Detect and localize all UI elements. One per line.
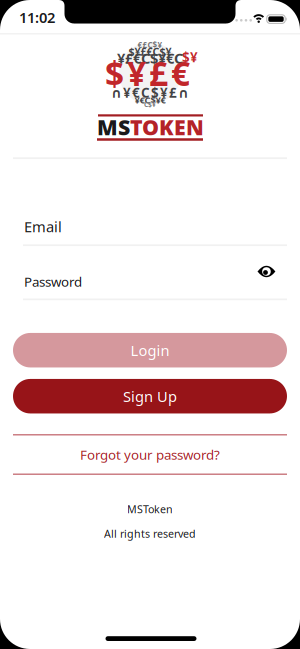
staticText: ¥€C$¥€ — [134, 94, 165, 106]
button[interactable]: Password — [0, 275, 300, 297]
staticText: C$¥ — [144, 100, 156, 109]
staticText: ¥£€C$¥€C — [117, 48, 183, 68]
button[interactable]: Email — [0, 218, 300, 244]
button[interactable]: Sign Up — [13, 379, 287, 413]
staticText: 11:02 — [19, 8, 55, 27]
staticText: MS — [97, 113, 130, 141]
staticText: Email — [24, 217, 62, 236]
staticText: ∩¥€C$¥£∩ — [111, 84, 189, 101]
staticText: Login — [130, 340, 169, 360]
staticText: Password — [24, 273, 82, 290]
staticText: $¥ — [182, 48, 198, 66]
staticText: Forgot your password? — [80, 446, 220, 463]
staticText: $¥£€ — [105, 51, 190, 95]
button[interactable]: Login — [13, 333, 287, 367]
staticText: All rights reserved — [104, 526, 196, 541]
staticText: MSToken — [127, 502, 173, 516]
staticText: TOKEN — [130, 113, 204, 141]
staticText: €£C$¥ — [137, 40, 162, 50]
button[interactable]: Forgot your password? — [13, 440, 287, 470]
staticText: Sign Up — [123, 386, 177, 406]
staticText: $¥£€C$¥ — [128, 44, 171, 59]
button[interactable]: Show password — [253, 261, 279, 281]
